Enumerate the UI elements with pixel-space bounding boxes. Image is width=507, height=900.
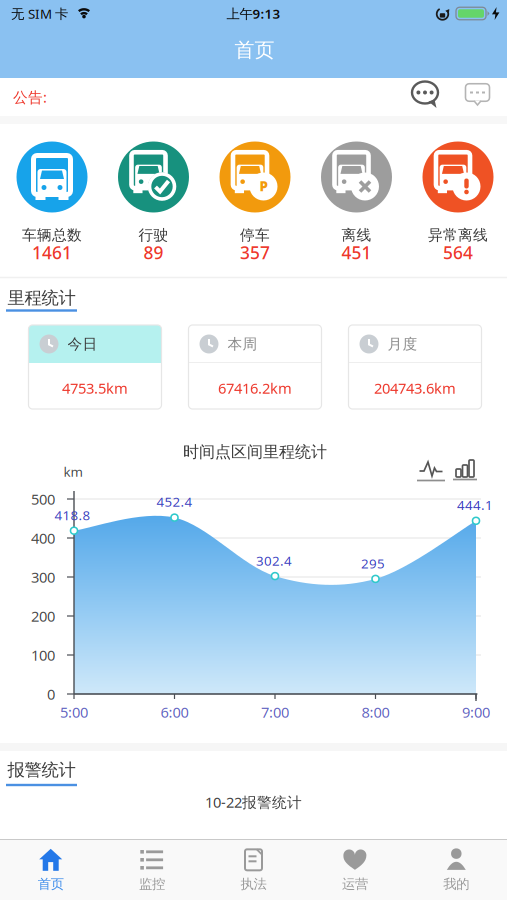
staticText: 9:00 — [462, 702, 490, 722]
staticText: 295 — [361, 554, 385, 572]
staticText: 452.4 — [156, 493, 192, 510]
staticText: 本周 — [227, 335, 257, 353]
staticText: 首页 — [38, 876, 64, 892]
staticText: 357 — [240, 241, 270, 264]
button[interactable]: 离线 — [306, 120, 407, 277]
staticText: 我的 — [443, 876, 469, 892]
staticText: 302.4 — [256, 552, 292, 569]
staticText: 8:00 — [361, 702, 389, 722]
staticText: 400 — [31, 528, 55, 548]
button[interactable]: 评论 — [464, 83, 490, 107]
staticText: 10-22报警统计 — [205, 792, 302, 812]
staticText: 报警统计 — [7, 759, 75, 781]
staticText: 100 — [31, 645, 55, 665]
button[interactable]: 执法 — [203, 840, 304, 900]
staticText: 564 — [443, 241, 473, 264]
button[interactable]: 我的 — [406, 840, 507, 900]
button[interactable]: 本周 — [188, 325, 321, 409]
staticText: 1461 — [32, 241, 72, 264]
button[interactable]: 消息 — [411, 81, 439, 109]
staticText: 车辆总数 — [22, 226, 82, 244]
staticText: 离线 — [341, 226, 371, 244]
staticText: P — [259, 177, 267, 195]
staticText: 行驶 — [138, 226, 168, 244]
staticText: 运营 — [342, 876, 368, 892]
button[interactable]: 今日 — [28, 325, 161, 409]
staticText: 444.1 — [457, 496, 493, 514]
button[interactable]: 行驶 — [103, 120, 204, 277]
button[interactable]: 柱状图 — [453, 455, 477, 481]
staticText: 公告: — [13, 87, 47, 107]
button[interactable]: 监控 — [101, 840, 203, 900]
staticText: 5:00 — [60, 702, 88, 722]
staticText: 异常离线 — [428, 226, 488, 244]
button[interactable]: 异常离线 — [407, 120, 507, 277]
staticText: 监控 — [139, 876, 165, 892]
staticText: 里程统计 — [7, 287, 75, 309]
staticText: 月度 — [387, 335, 417, 353]
staticText: 204743.6km — [374, 378, 456, 398]
button[interactable]: 运营 — [304, 840, 406, 900]
staticText: 首页 — [234, 38, 274, 62]
staticText: 7:00 — [261, 702, 289, 722]
button[interactable]: 首页 — [0, 840, 101, 900]
staticText: 451 — [341, 241, 371, 264]
button[interactable]: P — [204, 120, 306, 277]
staticText: 67416.2km — [218, 378, 292, 398]
staticText: 上午9:13 — [226, 5, 280, 22]
staticText: 200 — [31, 606, 55, 626]
staticText: 418.8 — [54, 506, 90, 524]
staticText: km — [63, 463, 82, 480]
staticText: 无 SIM 卡 — [11, 5, 68, 22]
staticText: 时间点区间里程统计 — [183, 442, 327, 462]
staticText: 500 — [31, 489, 55, 509]
button[interactable]: 车辆总数 — [1, 120, 103, 277]
staticText: 今日 — [67, 335, 97, 353]
staticText: 4753.5km — [62, 378, 128, 398]
staticText: 停车 — [240, 226, 270, 244]
button[interactable]: 公告: — [0, 78, 507, 116]
button[interactable]: 折线图 — [417, 456, 445, 482]
staticText: 89 — [143, 241, 163, 264]
button[interactable]: 月度 — [348, 325, 481, 409]
staticText: 6:00 — [160, 702, 188, 722]
staticText: 300 — [31, 567, 55, 587]
staticText: 0 — [47, 684, 55, 704]
staticText: 执法 — [240, 876, 266, 892]
